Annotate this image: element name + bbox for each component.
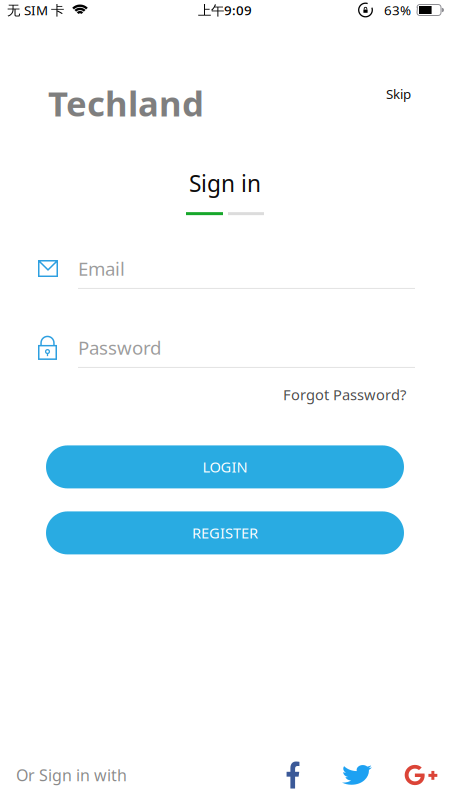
- staticText: Forgot Password?: [283, 385, 406, 404]
- staticText: Email: [78, 256, 125, 281]
- staticText: Sign in: [189, 168, 261, 198]
- button[interactable]: [404, 758, 438, 792]
- staticText: Techland: [48, 80, 204, 126]
- staticText: REGISTER: [192, 523, 258, 543]
- staticText: Skip: [386, 85, 411, 103]
- button[interactable]: Skip: [386, 85, 411, 103]
- staticText: LOGIN: [202, 457, 247, 477]
- button[interactable]: [276, 758, 310, 792]
- button[interactable]: REGISTER: [46, 511, 404, 554]
- button[interactable]: Forgot Password?: [283, 385, 406, 404]
- staticText: 上午9:09: [198, 1, 252, 19]
- button[interactable]: LOGIN: [46, 445, 404, 488]
- staticText: Or Sign in with: [16, 764, 127, 786]
- button[interactable]: Password: [38, 335, 415, 368]
- button[interactable]: [340, 758, 374, 792]
- button[interactable]: Email: [38, 256, 415, 289]
- staticText: 63%: [384, 1, 411, 19]
- staticText: Password: [78, 335, 161, 360]
- staticText: 无 SIM 卡: [7, 1, 64, 19]
